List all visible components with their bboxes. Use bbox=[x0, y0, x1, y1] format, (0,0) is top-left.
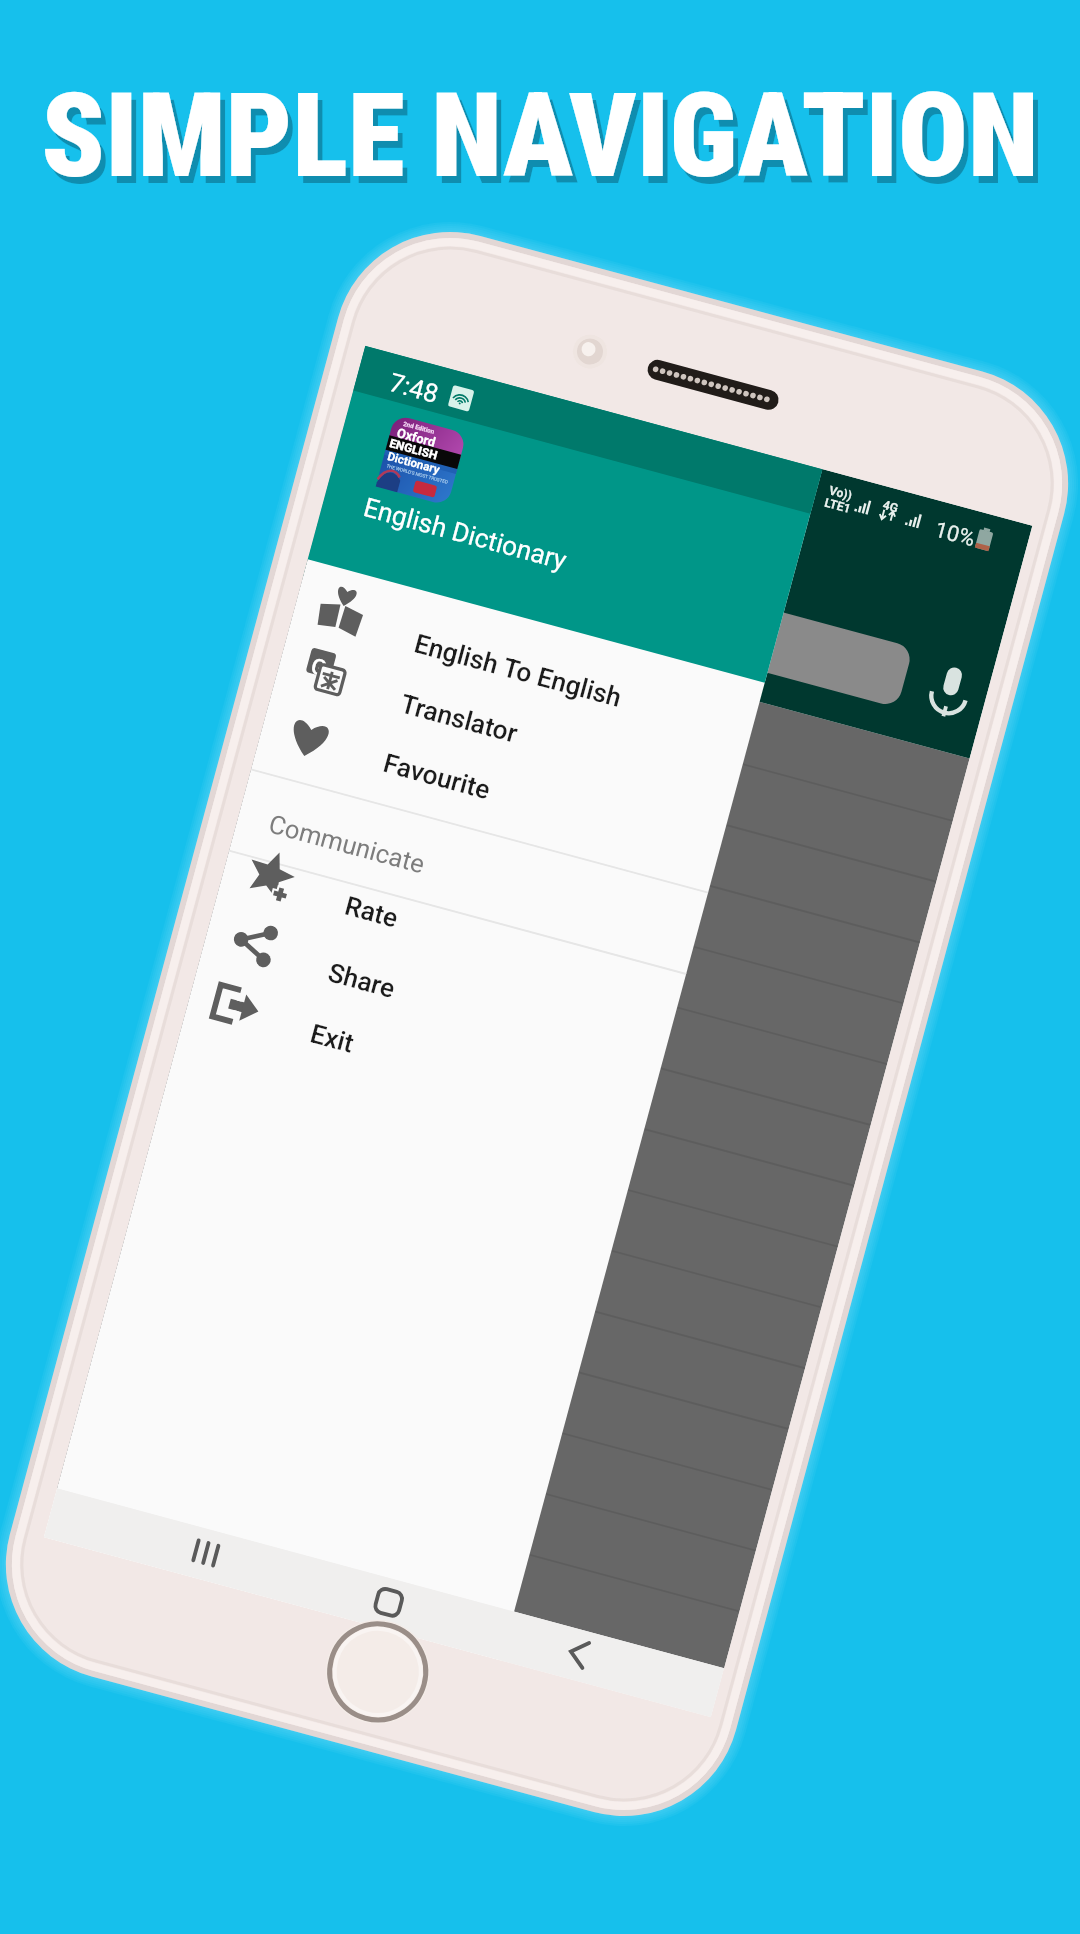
staticText: SIMPLE NAVIGATION bbox=[46, 75, 1044, 211]
staticText: SIMPLE NAVIGATION bbox=[41, 68, 1039, 204]
